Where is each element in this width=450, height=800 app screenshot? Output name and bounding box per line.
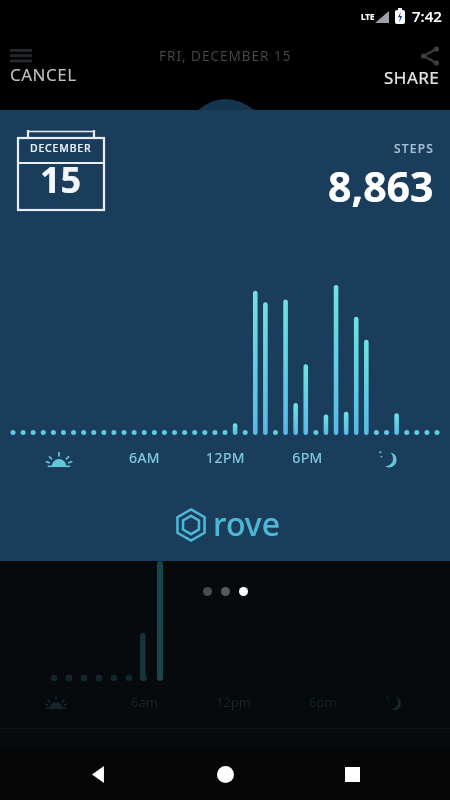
staticText: SHARE — [384, 66, 440, 89]
staticText: FRI, DECEMBER 15 — [159, 47, 292, 65]
button[interactable]: Back — [76, 752, 120, 796]
staticText: 6am — [131, 693, 158, 711]
button[interactable]: SHARE — [370, 42, 450, 93]
staticText: STEPS — [394, 140, 434, 156]
staticText: 6PM — [292, 448, 323, 467]
staticText: CANCEL — [10, 63, 77, 86]
staticText: 7:42 — [412, 6, 442, 26]
button[interactable]: Recent apps — [330, 752, 374, 796]
staticText: AVG. HOUR — [192, 743, 272, 762]
button[interactable]: Home — [203, 752, 247, 796]
staticText: BEST HOUR — [33, 743, 115, 762]
staticText: 12pm — [216, 693, 252, 711]
staticText: 6pm — [309, 693, 337, 711]
staticText: 8,863 — [328, 158, 434, 214]
staticText: rove — [213, 502, 281, 546]
staticText: 12PM — [206, 448, 245, 467]
staticText: 15 — [40, 155, 82, 204]
staticText: 6AM — [129, 448, 160, 467]
staticText: TOTAL — [376, 743, 421, 762]
staticText: LTE — [361, 11, 375, 22]
button[interactable]: CANCEL — [0, 45, 91, 90]
staticText: DECEMBER — [30, 141, 92, 155]
